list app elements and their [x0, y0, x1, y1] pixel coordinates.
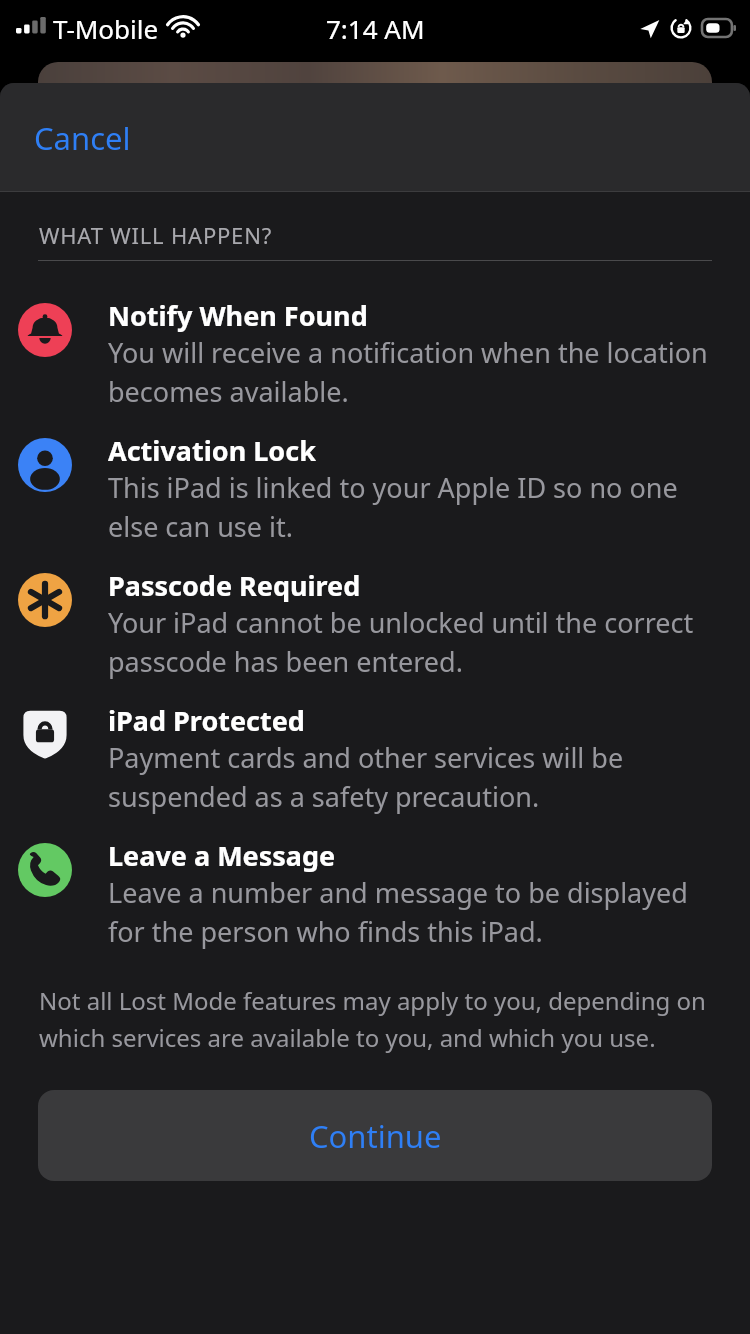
staticText: Leave a number and message to be display…: [108, 874, 726, 950]
staticText: Cancel: [34, 117, 131, 159]
staticText: You will receive a notification when the…: [108, 334, 726, 410]
staticText: 7:14 AM: [326, 11, 425, 46]
staticText: Your iPad cannot be unlocked until the c…: [108, 604, 726, 680]
staticText: T-Mobile: [53, 11, 159, 46]
staticText: Passcode Required: [108, 567, 361, 604]
staticText: Payment cards and other services will be…: [108, 739, 726, 815]
button[interactable]: Cancel: [18, 107, 147, 169]
staticText: iPad Protected: [108, 702, 305, 739]
staticText: Notify When Found: [108, 297, 368, 334]
staticText: Continue: [309, 1115, 442, 1157]
staticText: Leave a Message: [108, 837, 336, 874]
staticText: WHAT WILL HAPPEN?: [39, 220, 273, 250]
button[interactable]: Continue: [38, 1090, 712, 1181]
staticText: Not all Lost Mode features may apply to …: [39, 984, 711, 1054]
staticText: This iPad is linked to your Apple ID so …: [108, 469, 726, 545]
staticText: Activation Lock: [108, 432, 316, 469]
